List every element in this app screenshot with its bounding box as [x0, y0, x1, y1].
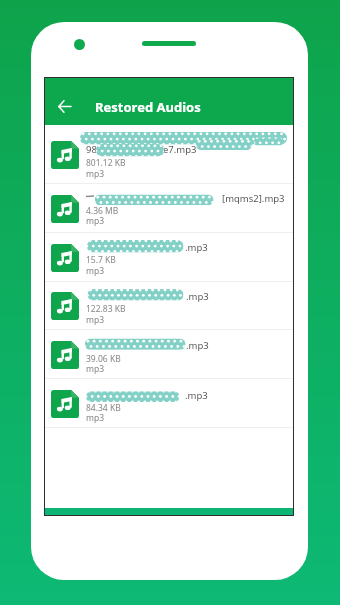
staticText: .mp3 [185, 389, 208, 402]
staticText: mp3 [86, 215, 105, 227]
button[interactable] [45, 125, 293, 184]
button[interactable]: Back [51, 93, 77, 119]
button[interactable] [45, 281, 293, 330]
staticText: 98ce1a4b356d2ffe7.mp3 [86, 143, 197, 156]
button[interactable] [45, 233, 293, 282]
staticText: .mp3 [186, 339, 209, 352]
staticText: mp3 [86, 314, 105, 326]
staticText: AUD-20180822-WA0031 audio track [86, 130, 245, 143]
button[interactable] [45, 379, 293, 428]
staticText: mp3 [86, 363, 105, 375]
staticText: Restored Audios [95, 98, 201, 116]
staticText: mp3 [86, 168, 105, 180]
button[interactable] [45, 330, 293, 379]
button[interactable] [45, 184, 293, 233]
staticText: mp3 [86, 265, 105, 277]
staticText: 39.06 KB [86, 353, 121, 365]
staticText: 801.12 KB [86, 157, 126, 169]
staticText: 4.36 MB [86, 205, 119, 217]
staticText: [mqms2].mp3 [222, 192, 285, 205]
staticText: 15.7 KB [86, 254, 116, 266]
staticText: 122.83 KB [86, 303, 126, 315]
staticText: .mp3 [185, 241, 208, 254]
staticText: 84.34 KB [86, 402, 121, 414]
staticText: .mp3 [186, 290, 209, 303]
staticText: mp3 [86, 412, 105, 424]
